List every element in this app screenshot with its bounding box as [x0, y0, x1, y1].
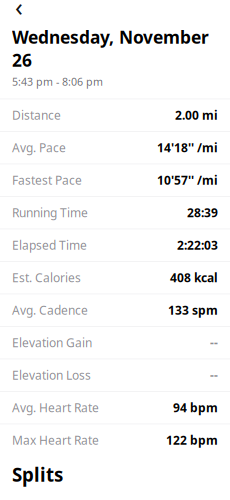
staticText: 28:39	[187, 205, 218, 221]
staticText: 94 bpm	[173, 400, 218, 416]
staticText: 2.00 mi	[175, 107, 218, 123]
staticText: --	[210, 367, 218, 383]
staticText: Fastest Pace	[12, 172, 82, 188]
staticText: Est. Calories	[12, 270, 81, 286]
staticText: Wednesday, November 26	[12, 25, 209, 71]
staticText: Avg. Cadence	[12, 302, 88, 318]
staticText: Elevation Gain	[12, 335, 92, 351]
staticText: Elapsed Time	[12, 237, 87, 253]
button[interactable]: Back	[6, 0, 32, 17]
staticText: Distance	[12, 107, 61, 123]
staticText: Max Heart Rate	[12, 432, 99, 448]
staticText: ‹	[15, 0, 23, 23]
staticText: 2:22:03	[177, 237, 218, 253]
staticText: 122 bpm	[166, 432, 218, 448]
staticText: 133 spm	[168, 302, 218, 318]
staticText: Elevation Loss	[12, 367, 91, 383]
staticText: Avg. Heart Rate	[12, 400, 99, 416]
staticText: --	[210, 335, 218, 351]
staticText: Splits	[12, 462, 63, 487]
staticText: Avg. Pace	[12, 140, 66, 156]
staticText: Running Time	[12, 205, 88, 221]
staticText: 5:43 pm - 8:06 pm	[12, 74, 103, 89]
staticText: 408 kcal	[170, 270, 218, 286]
staticText: 14'18'' /mi	[157, 140, 218, 156]
staticText: 10'57'' /mi	[157, 172, 218, 188]
